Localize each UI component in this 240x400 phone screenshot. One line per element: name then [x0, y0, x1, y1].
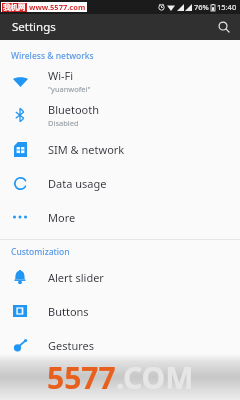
staticText: Buttons: [48, 304, 89, 319]
button[interactable]: Alert slider: [0, 260, 240, 294]
button[interactable]: SIM & network: [0, 132, 240, 166]
button[interactable]: Search: [214, 17, 234, 37]
staticText: Alert slider: [48, 270, 104, 285]
staticText: 15:40: [217, 2, 237, 12]
staticText: Wi-Fi: [48, 68, 74, 83]
staticText: Wireless & networks: [11, 50, 94, 62]
staticText: More: [48, 210, 76, 225]
button[interactable]: Buttons: [0, 294, 240, 328]
button[interactable]: Gestures: [0, 328, 240, 362]
button[interactable]: More: [0, 200, 240, 234]
staticText: SIM & network: [48, 142, 125, 157]
button[interactable]: Wi-Fi: [0, 64, 240, 98]
staticText: Bluetooth: [48, 102, 100, 117]
button[interactable]: Data usage: [0, 166, 240, 200]
staticText: 我机网: [3, 3, 26, 12]
staticText: 76%: [194, 2, 209, 12]
staticText: Settings: [12, 19, 56, 35]
staticText: Gestures: [48, 338, 95, 353]
staticText: 5577: [47, 357, 116, 398]
staticText: Customization: [11, 246, 70, 258]
button[interactable]: Bluetooth: [0, 98, 240, 132]
staticText: www.5577.com: [29, 2, 86, 12]
staticText: Data usage: [48, 176, 107, 191]
staticText: Disabled: [48, 118, 79, 128]
staticText: .COM: [116, 357, 194, 398]
staticText: "yuanwofei": [48, 84, 91, 94]
